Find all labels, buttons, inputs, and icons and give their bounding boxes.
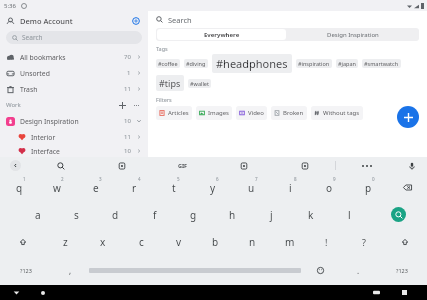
button[interactable]: d [96,201,135,228]
button[interactable]: 1 [0,174,38,201]
staticText: #japan [338,60,356,67]
button[interactable]: More options [131,100,142,111]
button[interactable]: Unsorted [0,65,148,81]
button[interactable]: #tips [156,75,184,91]
button[interactable]: #inspiration [296,59,332,68]
staticText: 7 [255,176,258,182]
staticText: 6 [216,176,219,182]
button[interactable]: 6 [193,174,232,201]
staticText: y [210,181,216,195]
staticText: q [16,181,23,195]
staticText: Articles [168,109,189,117]
button[interactable]: Keyboard [372,288,381,297]
button[interactable]: Space [89,262,301,278]
button[interactable]: b [197,228,234,255]
button[interactable]: Collapse [0,157,30,174]
button[interactable]: Recent apps [400,288,409,297]
staticText: Design Inspiration [20,117,79,126]
button[interactable]: More [336,157,397,174]
button[interactable]: c [122,228,160,255]
button[interactable]: search [30,157,91,174]
button[interactable]: j [252,201,291,228]
button[interactable]: All bookmarks [0,49,148,65]
button[interactable]: clipboard [213,157,274,174]
staticText: 11 [124,85,131,93]
staticText: 1 [127,69,131,77]
button[interactable]: Back [12,288,21,297]
button[interactable]: Shift [0,228,46,255]
button[interactable]: z [46,228,84,255]
staticText: Everywhere [204,31,240,39]
button[interactable]: Everywhere [157,29,286,40]
staticText: . [357,265,360,276]
button[interactable]: Broken [271,106,307,120]
staticText: j [270,208,273,222]
button[interactable]: 4 [115,174,154,201]
staticText: #coffee [158,60,178,67]
staticText: z [63,235,68,249]
button[interactable]: Shift [382,228,427,255]
button[interactable]: k [291,201,330,228]
button[interactable]: h [213,201,252,228]
button[interactable]: m [271,228,308,255]
staticText: m [285,235,295,249]
button[interactable]: v [160,228,197,255]
button[interactable]: gif [152,157,213,174]
button[interactable]: #japan [336,59,358,68]
button[interactable]: Interior [0,129,148,145]
button[interactable]: Home [38,288,47,297]
button[interactable]: settings [274,157,335,174]
staticText: v [176,235,182,249]
staticText: Filters [156,96,172,103]
button[interactable]: Search [148,11,427,28]
button[interactable]: s [57,201,96,228]
button[interactable]: g [174,201,213,228]
button[interactable]: #diving [184,59,208,68]
button[interactable]: l [330,201,369,228]
button[interactable]: Search [369,201,427,228]
button[interactable]: sticker [91,157,152,174]
button[interactable]: Interface [0,145,148,157]
staticText: k [308,208,314,222]
button[interactable]: 0 [349,174,388,201]
button[interactable]: x [84,228,122,255]
button[interactable]: Add bookmark [397,106,419,128]
button[interactable]: Trash [0,81,148,97]
button[interactable]: Search [6,31,142,44]
button[interactable]: ! [308,228,345,255]
button[interactable]: 5 [154,174,193,201]
button[interactable]: Backspace [388,174,427,201]
button[interactable]: Design Inspiration [287,28,419,41]
button[interactable]: ? [345,228,382,255]
button[interactable]: f [135,201,174,228]
button[interactable]: #headphones [212,54,292,73]
button[interactable]: ?123 [377,255,427,285]
button[interactable]: ?123 [0,255,51,285]
button[interactable]: #smartwatch [362,59,401,68]
button[interactable]: 9 [310,174,349,201]
button[interactable]: 7 [232,174,271,201]
staticText: n [249,235,256,249]
staticText: Work [6,101,21,109]
button[interactable]: Demo Account [0,11,148,31]
button[interactable]: 2 [38,174,76,201]
button[interactable]: Video [236,106,267,120]
button[interactable]: a [18,201,57,228]
button[interactable]: Settings [130,15,142,27]
button[interactable]: #wallet [188,79,211,88]
button[interactable]: 8 [271,174,310,201]
button[interactable]: Add collection [117,100,128,111]
button[interactable]: 3 [76,174,115,201]
button[interactable]: Articles [156,106,192,120]
button[interactable]: n [234,228,271,255]
button[interactable]: Without tags [311,106,363,120]
button[interactable]: Images [196,106,232,120]
button[interactable]: #coffee [156,59,180,68]
button[interactable]: Design Inspiration [0,113,148,129]
staticText: Demo Account [20,16,73,26]
button[interactable]: Voice input [397,157,427,174]
button[interactable]: Emoji [301,255,339,285]
button[interactable]: , [51,255,89,285]
staticText: Search [168,15,192,25]
